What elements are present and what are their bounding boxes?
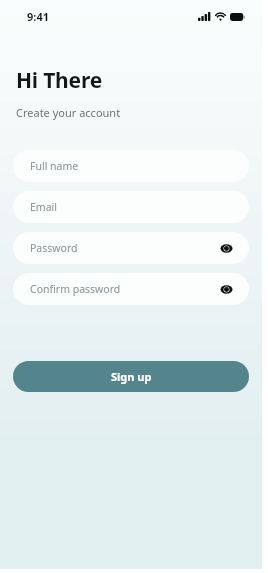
button[interactable]: Full name bbox=[13, 150, 249, 182]
staticText: Password bbox=[30, 241, 217, 255]
staticText: Sign up bbox=[111, 369, 152, 384]
button[interactable]: Sign up bbox=[13, 361, 249, 392]
staticText: Full name bbox=[30, 159, 235, 173]
button[interactable]: Confirm password bbox=[13, 273, 249, 305]
staticText: Hi There bbox=[16, 66, 103, 95]
staticText: 9:41 bbox=[27, 9, 49, 24]
staticText: Email bbox=[30, 200, 235, 214]
button[interactable]: Show password bbox=[217, 239, 235, 257]
button[interactable]: Email bbox=[13, 191, 249, 223]
button[interactable]: Password bbox=[13, 232, 249, 264]
staticText: Confirm password bbox=[30, 282, 217, 296]
button[interactable]: Show password bbox=[217, 280, 235, 298]
staticText: Create your account bbox=[16, 105, 121, 120]
